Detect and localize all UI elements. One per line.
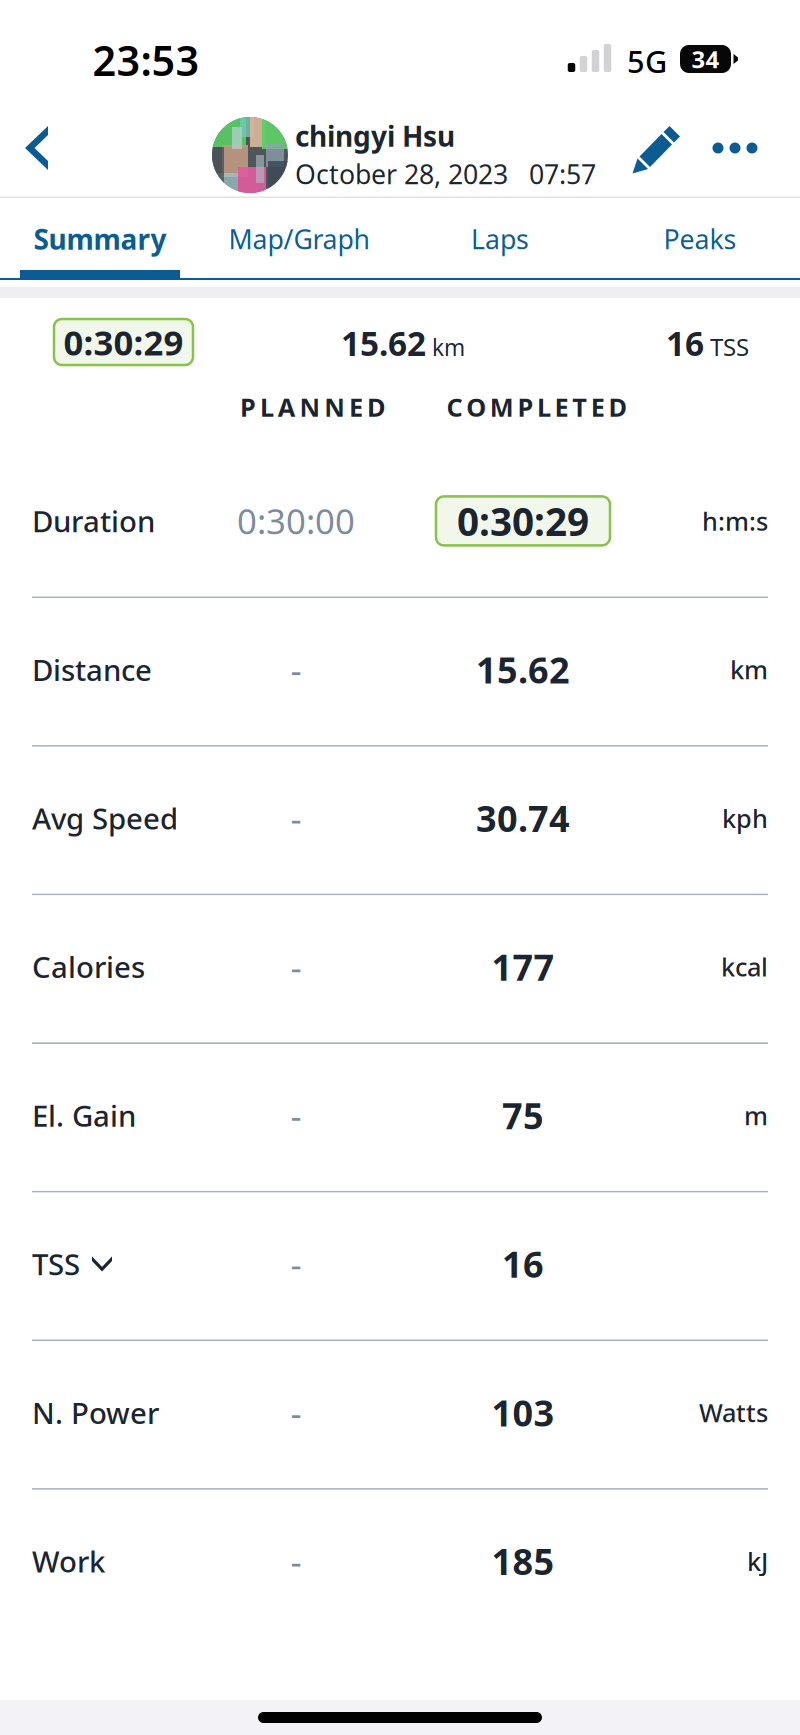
button[interactable]: El. Gain [0,1044,800,1193]
button[interactable]: More options [700,113,770,183]
staticText: - [290,944,301,990]
staticText: N. Power [32,1393,159,1432]
staticText: Peaks [663,221,736,257]
button[interactable]: N. Power [0,1341,800,1490]
staticText: TSS [710,331,749,363]
staticText: PLANNED [240,390,386,424]
staticText: Distance [32,650,152,689]
staticText: Map/Graph [228,221,369,257]
staticText: Calories [32,947,145,986]
staticText: TSS [32,1244,80,1283]
staticText: COMPLETED [447,390,627,424]
staticText: - [290,1241,301,1287]
staticText: 0:30:29 [63,319,183,365]
staticText: Laps [471,221,529,257]
button[interactable]: Edit [621,113,691,183]
button[interactable]: Distance [0,598,800,747]
staticText: 23:53 [92,33,199,87]
staticText: Summary [33,220,166,258]
staticText: 185 [491,1537,554,1585]
staticText: 5G [627,41,667,81]
staticText: Duration [32,501,155,540]
staticText: 103 [491,1389,554,1436]
staticText: 30.74 [476,794,570,842]
button[interactable]: Map/Graph [199,198,399,280]
button[interactable]: Work [0,1490,800,1638]
staticText: kph [722,801,768,835]
staticText: 0:30:29 [457,495,589,546]
staticText: 15.62 [476,646,570,693]
button[interactable]: TSS [0,1193,800,1341]
staticText: chingyi Hsu [295,117,455,155]
button[interactable]: Duration [0,450,800,598]
staticText: Watts [699,1396,768,1429]
staticText: Work [32,1542,105,1581]
staticText: km [730,653,768,686]
staticText: El. Gain [32,1096,136,1135]
staticText: km [432,332,465,362]
staticText: kJ [747,1544,768,1578]
button[interactable]: Summary [0,198,200,280]
staticText: October 28, 2023 07:57 [295,156,596,192]
button[interactable]: Avg Speed [0,747,800,895]
staticText: - [290,795,301,841]
staticText: - [290,1092,301,1138]
staticText: - [290,1538,301,1584]
staticText: 34 [691,43,719,75]
staticText: 177 [491,943,554,991]
staticText: kcal [721,950,768,983]
staticText: 0:30:00 [237,498,355,544]
staticText: 75 [502,1091,544,1139]
button[interactable]: Laps [400,198,600,280]
button[interactable]: Peaks [600,198,800,280]
staticText: m [744,1098,768,1132]
staticText: - [290,646,301,692]
staticText: Avg Speed [32,799,178,838]
staticText: - [290,1389,301,1435]
button[interactable]: Calories [0,895,800,1044]
staticText: 15.62 [341,321,426,365]
staticText: 16 [666,321,704,365]
staticText: h:m:s [702,504,768,538]
staticText: 16 [502,1240,544,1288]
button[interactable]: Back [0,111,74,185]
